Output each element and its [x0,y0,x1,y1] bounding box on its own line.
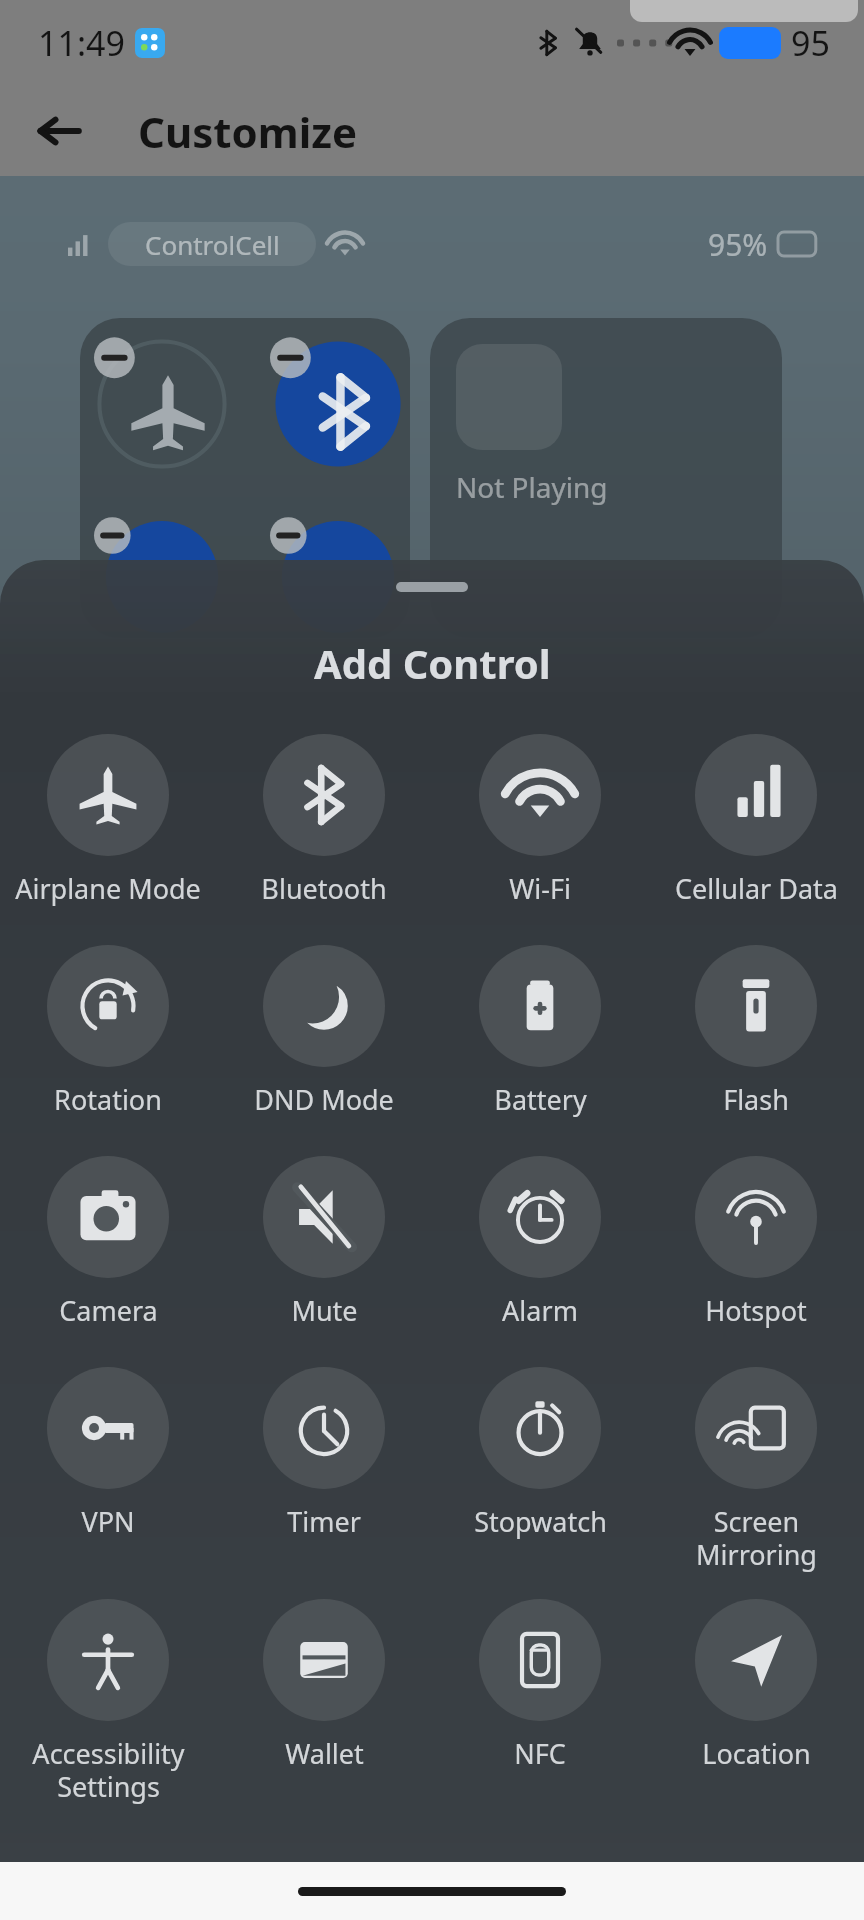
button[interactable]: Wallet [216,1595,432,1776]
button[interactable]: Rotation [0,941,216,1122]
staticText: Rotation [54,1081,162,1118]
button[interactable]: Stopwatch [432,1363,648,1544]
staticText: Flash [723,1081,789,1118]
button[interactable]: Mute [216,1152,432,1333]
staticText: 11:49 [38,20,125,66]
staticText: 95 [791,20,830,66]
button[interactable]: Accessibility Settings [0,1595,216,1809]
button[interactable]: Bluetooth [216,730,432,911]
staticText: Screen Mirroring [696,1503,817,1573]
staticText: 95% [708,224,768,265]
button[interactable]: Airplane Mode [0,730,216,911]
button[interactable]: Wi-Fi [432,730,648,911]
button[interactable]: Screen Mirroring [648,1363,864,1577]
button[interactable]: DND Mode [216,941,432,1122]
button[interactable]: Camera [0,1152,216,1333]
staticText: Camera [59,1292,158,1329]
staticText: Timer [287,1503,361,1540]
staticText: Hotspot [705,1292,807,1329]
button[interactable]: NFC [432,1595,648,1776]
staticText: Accessibility Settings [32,1735,185,1805]
staticText: Battery [494,1081,587,1118]
button[interactable]: Timer [216,1363,432,1544]
staticText: NFC [514,1735,566,1772]
staticText: DND Mode [254,1081,394,1118]
staticText: Stopwatch [474,1503,607,1540]
button[interactable]: Flash [648,941,864,1122]
staticText: Wi-Fi [509,870,571,907]
staticText: Airplane Mode [15,870,201,907]
staticText: Add Control [314,636,551,690]
staticText: Location [702,1735,811,1772]
button[interactable]: Cellular Data [648,730,864,911]
staticText: Customize [138,103,358,160]
staticText: Bluetooth [261,870,387,907]
button[interactable]: Hotspot [648,1152,864,1333]
staticText: VPN [81,1503,135,1540]
staticText: ControlCell [145,227,280,262]
staticText: Not Playing [456,468,608,506]
button[interactable]: Alarm [432,1152,648,1333]
staticText: Cellular Data [675,870,838,907]
staticText: Mute [291,1292,358,1329]
staticText: Wallet [285,1735,364,1772]
button[interactable]: Battery [432,941,648,1122]
button[interactable]: Location [648,1595,864,1776]
button[interactable]: Back [22,94,96,168]
staticText: Alarm [502,1292,578,1329]
button[interactable]: VPN [0,1363,216,1544]
